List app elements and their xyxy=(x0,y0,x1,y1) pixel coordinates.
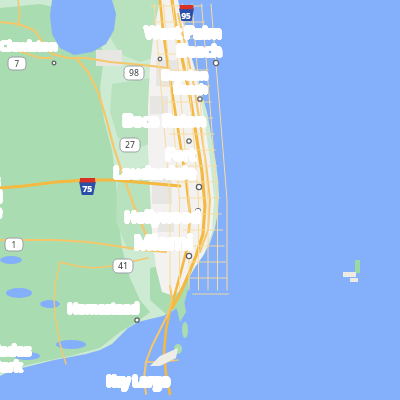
button[interactable]: Map of South Florida xyxy=(0,0,400,400)
